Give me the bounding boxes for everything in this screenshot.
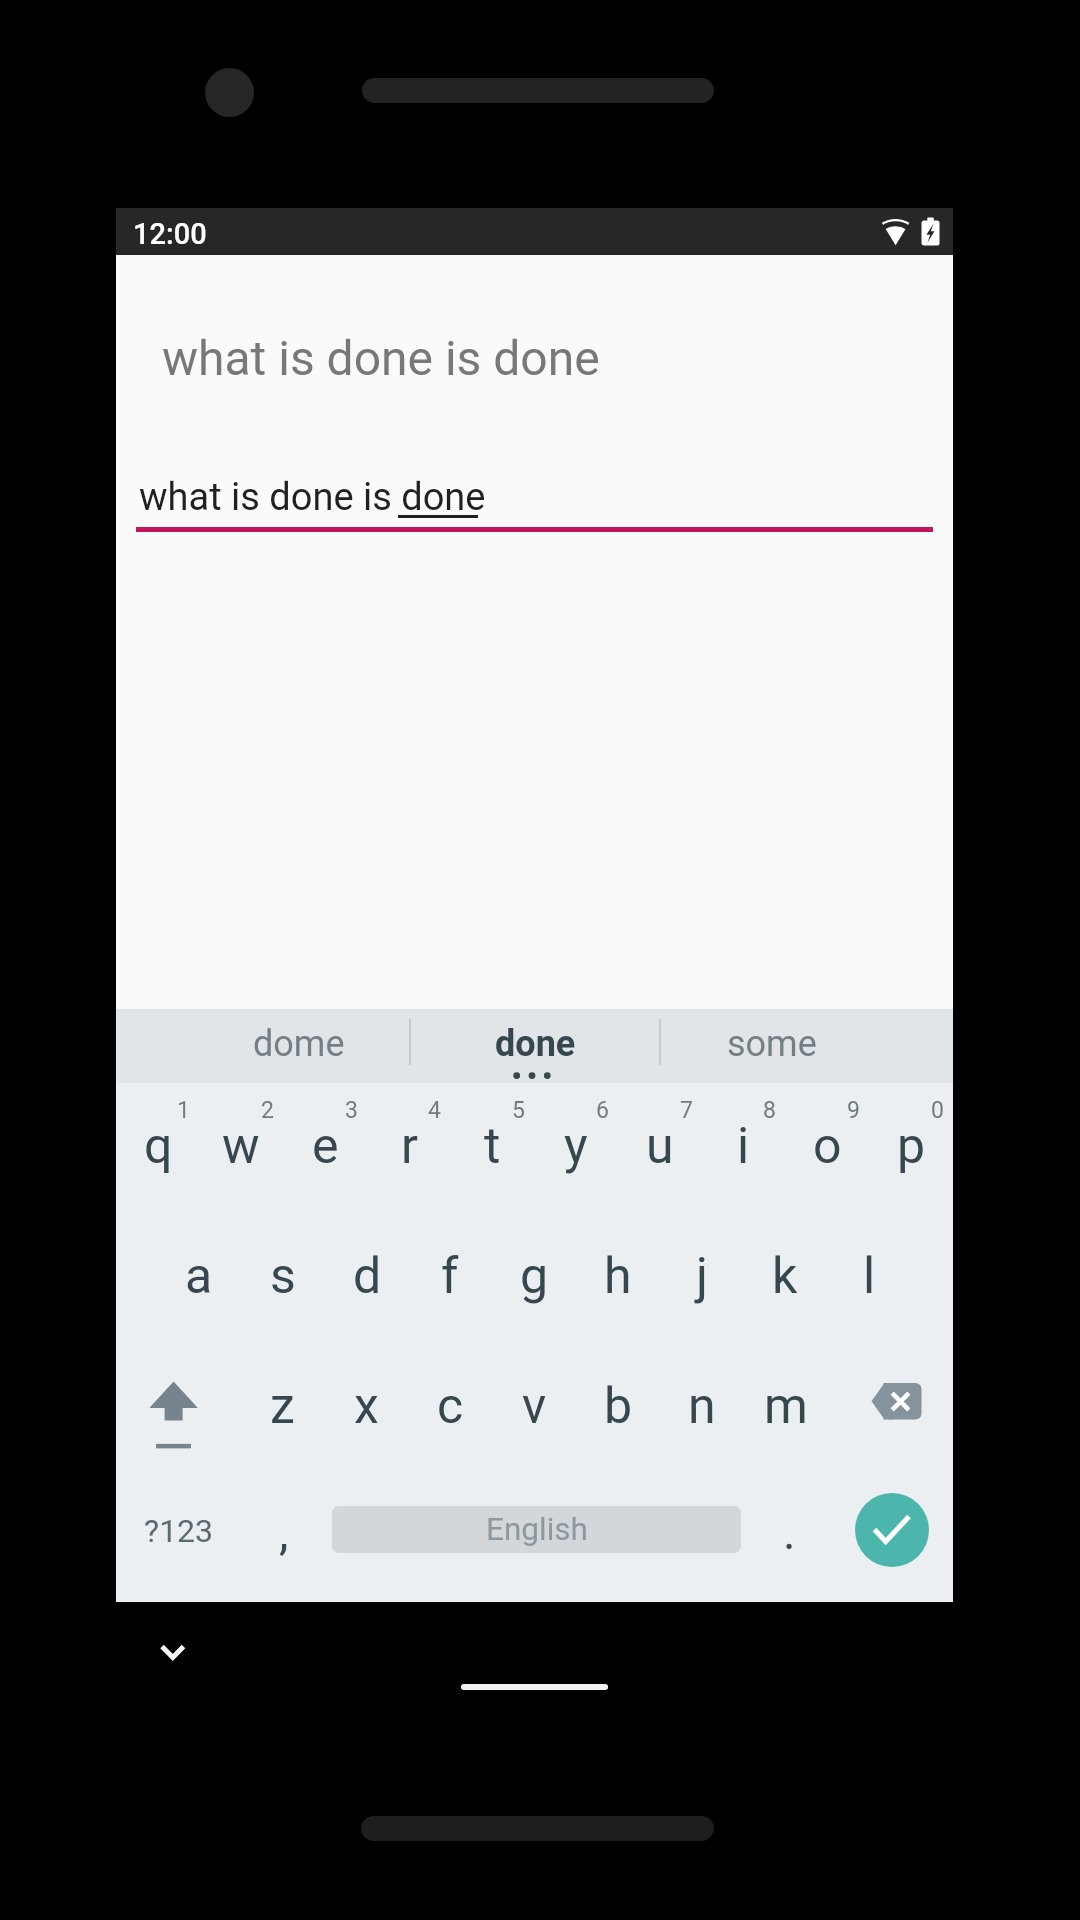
button[interactable]: dome bbox=[199, 1009, 399, 1079]
button[interactable]: x bbox=[324, 1341, 408, 1471]
button[interactable] bbox=[145, 1625, 200, 1680]
staticText: x bbox=[354, 1377, 379, 1436]
staticText: o bbox=[813, 1117, 842, 1176]
button[interactable]: h bbox=[576, 1211, 660, 1341]
staticText: k bbox=[772, 1247, 798, 1306]
button[interactable]: z bbox=[240, 1341, 324, 1471]
button[interactable]: done bbox=[435, 1009, 635, 1079]
staticText: s bbox=[270, 1247, 296, 1306]
staticText: 0 bbox=[931, 1097, 944, 1124]
button[interactable] bbox=[828, 1343, 953, 1473]
staticText: m bbox=[764, 1377, 808, 1436]
staticText: t bbox=[484, 1117, 501, 1176]
staticText: 9 bbox=[847, 1097, 860, 1124]
button[interactable]: . bbox=[747, 1467, 831, 1597]
staticText: 7 bbox=[680, 1097, 693, 1124]
staticText: j bbox=[696, 1247, 708, 1306]
staticText: what is done is done bbox=[139, 475, 486, 520]
button[interactable]: English bbox=[332, 1506, 741, 1553]
staticText: c bbox=[437, 1377, 464, 1436]
staticText: y bbox=[564, 1117, 588, 1176]
button[interactable]: q bbox=[116, 1081, 200, 1211]
staticText: 3 bbox=[345, 1097, 358, 1124]
staticText: done bbox=[495, 1023, 576, 1065]
button[interactable]: l bbox=[827, 1211, 911, 1341]
staticText: a bbox=[185, 1247, 213, 1306]
button[interactable]: t bbox=[450, 1081, 534, 1211]
staticText: u bbox=[646, 1117, 674, 1176]
staticText: z bbox=[270, 1377, 295, 1436]
button[interactable]: w bbox=[199, 1081, 283, 1211]
button[interactable]: r bbox=[367, 1081, 451, 1211]
staticText: e bbox=[312, 1117, 339, 1176]
staticText: 12:00 bbox=[133, 217, 207, 251]
staticText: w bbox=[222, 1117, 260, 1176]
staticText: 8 bbox=[763, 1097, 776, 1124]
button[interactable]: g bbox=[492, 1211, 576, 1341]
staticText: what is done is done bbox=[162, 330, 600, 386]
button[interactable]: , bbox=[242, 1467, 326, 1597]
button[interactable]: f bbox=[408, 1211, 492, 1341]
button[interactable]: c bbox=[408, 1341, 492, 1471]
staticText: n bbox=[688, 1377, 716, 1436]
button[interactable]: n bbox=[660, 1341, 744, 1471]
button[interactable]: d bbox=[325, 1211, 409, 1341]
staticText: q bbox=[144, 1117, 173, 1176]
staticText: English bbox=[486, 1511, 588, 1548]
button[interactable]: v bbox=[492, 1341, 576, 1471]
staticText: p bbox=[897, 1117, 926, 1176]
button[interactable] bbox=[116, 1343, 240, 1473]
button[interactable]: m bbox=[744, 1341, 828, 1471]
staticText: v bbox=[522, 1377, 547, 1436]
staticText: some bbox=[727, 1023, 817, 1065]
button[interactable]: y bbox=[534, 1081, 618, 1211]
button[interactable]: e bbox=[283, 1081, 367, 1211]
button[interactable]: s bbox=[241, 1211, 325, 1341]
button[interactable]: some bbox=[672, 1009, 872, 1079]
button[interactable] bbox=[136, 460, 933, 535]
staticText: ?123 bbox=[144, 1512, 214, 1550]
staticText: l bbox=[863, 1247, 876, 1306]
staticText: dome bbox=[253, 1023, 345, 1065]
staticText: h bbox=[604, 1247, 632, 1306]
button[interactable]: p bbox=[869, 1081, 953, 1211]
button[interactable]: i bbox=[701, 1081, 785, 1211]
staticText: 5 bbox=[512, 1097, 525, 1124]
button[interactable]: o bbox=[785, 1081, 869, 1211]
staticText: 2 bbox=[261, 1097, 274, 1124]
staticText: r bbox=[401, 1117, 418, 1176]
staticText: i bbox=[737, 1117, 750, 1176]
button[interactable]: k bbox=[743, 1211, 827, 1341]
button[interactable]: u bbox=[618, 1081, 702, 1211]
button[interactable] bbox=[855, 1493, 929, 1567]
button[interactable]: ?123 bbox=[116, 1466, 242, 1596]
staticText: . bbox=[783, 1504, 796, 1560]
staticText: f bbox=[441, 1247, 459, 1306]
staticText: g bbox=[520, 1247, 549, 1306]
button[interactable]: j bbox=[660, 1211, 744, 1341]
button[interactable]: b bbox=[576, 1341, 660, 1471]
staticText: 4 bbox=[428, 1097, 441, 1124]
staticText: d bbox=[353, 1247, 382, 1306]
staticText: 1 bbox=[177, 1097, 190, 1124]
staticText: 6 bbox=[596, 1097, 609, 1124]
button[interactable]: a bbox=[157, 1211, 241, 1341]
staticText: , bbox=[279, 1504, 289, 1560]
staticText: b bbox=[604, 1377, 633, 1436]
